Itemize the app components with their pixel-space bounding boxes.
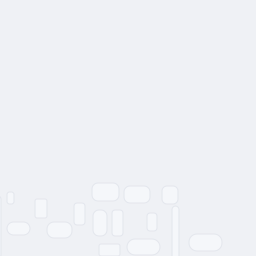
button[interactable]: Card three bbox=[162, 186, 178, 204]
button[interactable]: Pill four bbox=[189, 234, 222, 251]
button[interactable]: Card two bbox=[124, 186, 150, 203]
button[interactable]: Pill one bbox=[7, 222, 30, 235]
button[interactable]: Pill three bbox=[127, 239, 160, 255]
button[interactable]: Pill two bbox=[47, 222, 72, 238]
button[interactable]: Card one bbox=[92, 183, 119, 201]
